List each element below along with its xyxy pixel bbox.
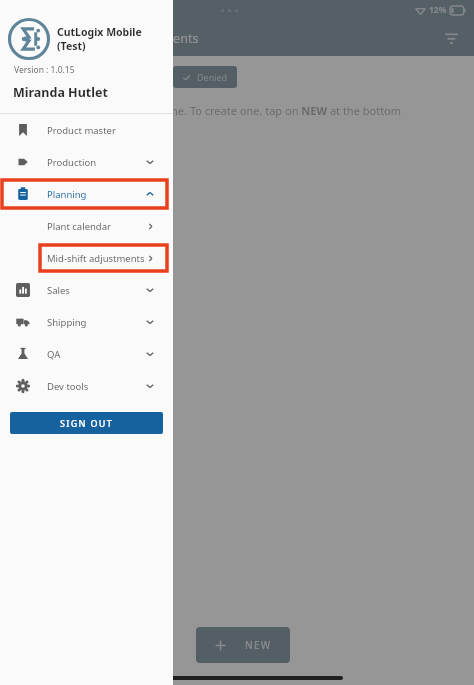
staticText: Dev tools [47, 380, 89, 393]
button[interactable]: Pending [14, 66, 83, 88]
button[interactable]: Sales [0, 274, 173, 306]
button[interactable]: Mid-shift adjustments [0, 242, 173, 274]
staticText: CutLogix Mid-shift Adjustments [14, 30, 199, 47]
staticText: NEW [245, 638, 272, 652]
staticText: Product master [47, 124, 116, 137]
staticText: There are no requests at this time. To c… [10, 103, 402, 118]
button[interactable]: Filter [434, 21, 468, 55]
button[interactable]: Product master [0, 114, 173, 146]
button[interactable]: SIGN OUT [10, 412, 163, 434]
staticText: Shipping [47, 316, 87, 329]
button[interactable]: Approved [91, 66, 165, 88]
staticText: Version : 1.0.15 [14, 64, 75, 76]
button[interactable]: Planning [0, 178, 173, 210]
staticText: QA [47, 348, 61, 361]
staticText: Sales [47, 284, 70, 297]
button[interactable]: Denied [173, 66, 237, 88]
staticText: Production [47, 156, 97, 169]
button[interactable]: Dev tools [0, 370, 173, 402]
staticText: CutLogix Mobile (Test) [57, 25, 173, 53]
staticText: Pending [38, 71, 74, 83]
staticText: SIGN OUT [60, 417, 114, 429]
button[interactable]: Plant calendar [0, 210, 173, 242]
staticText: Planning [47, 188, 87, 201]
staticText: 12% [429, 4, 447, 16]
button[interactable]: Production [0, 146, 173, 178]
button[interactable]: Shipping [0, 306, 173, 338]
button[interactable]: QA [0, 338, 173, 370]
staticText: Miranda Hutlet [13, 84, 108, 101]
staticText: Plant calendar [47, 220, 111, 233]
button[interactable]: NEW [196, 627, 290, 663]
staticText: Denied [197, 71, 228, 83]
staticText: Mid-shift adjustments [47, 252, 145, 265]
